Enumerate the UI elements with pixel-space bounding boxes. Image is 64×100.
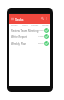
button[interactable]: Open navigation menu	[10, 16, 15, 21]
button[interactable]: Completed	[44, 41, 49, 46]
staticText: TASKS	[11, 24, 18, 27]
staticText: LISTS	[22, 24, 28, 27]
staticText: Write Report	[11, 35, 28, 39]
staticText: 10:30	[38, 29, 44, 32]
button[interactable]: Search	[40, 16, 45, 21]
staticText: Tasks	[15, 17, 24, 21]
button[interactable]: Weekly Plan	[9, 40, 50, 47]
button[interactable]: NOTES	[30, 24, 40, 27]
button[interactable]: Write Report	[9, 33, 50, 40]
staticText: MORE	[42, 24, 49, 27]
button[interactable]: Completed	[44, 34, 49, 39]
button[interactable]: LISTS	[20, 24, 30, 27]
staticText: NOTES	[31, 24, 39, 27]
staticText: 09:15	[38, 42, 44, 45]
button[interactable]: MORE	[40, 24, 50, 27]
staticText: 14:00	[38, 35, 44, 38]
staticText: Review Team Meeting	[11, 29, 39, 33]
button[interactable]: More options	[44, 16, 49, 21]
staticText: Weekly Plan	[11, 42, 27, 46]
button[interactable]: Completed	[44, 28, 49, 33]
button[interactable]: TASKS	[9, 24, 20, 27]
button[interactable]: Review Team Meeting	[9, 27, 50, 34]
